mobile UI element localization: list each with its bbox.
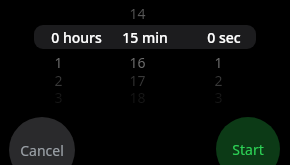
staticText: Start — [232, 140, 264, 159]
button[interactable]: Start — [216, 117, 280, 165]
staticText: 17 — [129, 71, 146, 90]
staticText: 15 min — [122, 28, 168, 47]
staticText: 2 — [214, 71, 223, 90]
staticText: 3 — [54, 88, 63, 107]
staticText: 0 sec — [207, 28, 241, 47]
staticText: 14 — [129, 4, 146, 23]
staticText: 1 — [214, 53, 223, 72]
button[interactable] — [34, 25, 256, 49]
staticText: 2 — [54, 71, 63, 90]
staticText: 16 — [129, 53, 146, 72]
staticText: 18 — [129, 88, 146, 107]
staticText: 1 — [54, 53, 63, 72]
staticText: Cancel — [20, 141, 64, 160]
staticText: 3 — [214, 88, 223, 107]
staticText: 0 hours — [51, 28, 102, 47]
button[interactable]: Cancel — [9, 117, 75, 165]
